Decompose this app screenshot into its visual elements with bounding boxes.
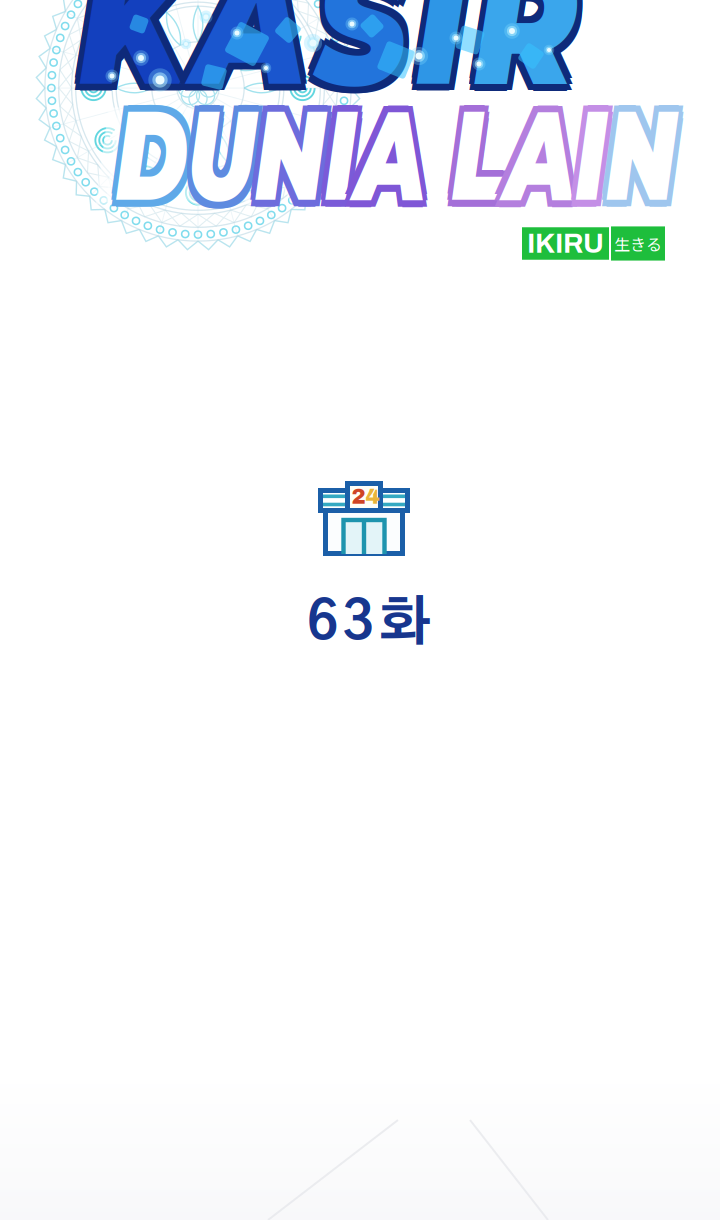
staticText: I [583, 105, 615, 215]
staticText: N [615, 100, 688, 210]
staticText: S [317, 0, 400, 99]
staticText: L [449, 104, 505, 215]
staticText: A [505, 100, 578, 210]
staticText: A [515, 100, 588, 210]
staticText: U [179, 100, 249, 210]
staticText: K [95, 0, 192, 95]
staticText: A [505, 95, 578, 206]
staticText [427, 95, 454, 205]
staticText: N [249, 100, 322, 210]
staticText: S [322, 0, 405, 95]
staticText: A [505, 104, 578, 215]
staticText: 4 [365, 485, 379, 508]
staticText: U [179, 105, 249, 215]
staticText: R [457, 0, 551, 104]
staticText: N [620, 95, 693, 206]
staticText: R [467, 0, 561, 99]
staticText: N [254, 95, 327, 206]
staticText [427, 105, 454, 215]
staticText: R [462, 0, 556, 104]
staticText: N [615, 100, 688, 210]
staticText: N [615, 105, 688, 215]
staticText: I [588, 104, 620, 215]
staticText: L [454, 100, 510, 210]
staticText: N [254, 104, 327, 215]
staticText: K [105, 0, 202, 104]
staticText: I [583, 100, 615, 210]
staticText: A [349, 100, 422, 210]
staticText: I [327, 95, 359, 206]
staticText: L [459, 95, 515, 206]
staticText: A [206, 0, 308, 104]
staticText: S [312, 0, 395, 104]
staticText: D [99, 100, 174, 210]
staticText: IKIRU [527, 228, 604, 259]
staticText: N [615, 100, 688, 210]
staticText [427, 100, 454, 210]
staticText: N [244, 95, 317, 206]
staticText: K [100, 0, 197, 99]
staticText: I [409, 0, 453, 99]
staticText: A [359, 104, 432, 215]
staticText: I [583, 100, 615, 210]
staticText: L [449, 95, 505, 206]
staticText: U [179, 100, 249, 210]
staticText: I [414, 0, 458, 95]
staticText: N [620, 104, 693, 215]
staticText: D [99, 95, 174, 206]
staticText: L [459, 104, 515, 215]
staticText: S [317, 0, 400, 94]
staticText: L [454, 95, 510, 205]
staticText: I [404, 0, 448, 95]
staticText: I [317, 100, 349, 210]
staticText: 生きる [614, 232, 662, 255]
staticText: 63화 [307, 597, 431, 651]
staticText: I [588, 100, 620, 210]
staticText: N [249, 100, 322, 210]
staticText: U [184, 104, 254, 215]
staticText: I [578, 104, 610, 215]
staticText: K [95, 0, 192, 99]
staticText: S [312, 0, 395, 95]
staticText: A [349, 95, 422, 206]
staticText: N [249, 105, 322, 215]
staticText: S [322, 0, 405, 104]
staticText: N [249, 95, 322, 205]
staticText: D [104, 100, 179, 210]
staticText: A [510, 95, 583, 205]
staticText: U [184, 95, 254, 206]
staticText: I [409, 0, 453, 94]
staticText: I [322, 100, 354, 210]
staticText: D [104, 95, 179, 205]
staticText: A [510, 100, 583, 210]
staticText: N [610, 100, 683, 210]
staticText: I [322, 100, 354, 210]
staticText: D [104, 100, 179, 210]
staticText: L [459, 100, 515, 210]
staticText: N [615, 95, 688, 205]
staticText: K [105, 0, 202, 99]
staticText [427, 100, 454, 210]
staticText: S [322, 0, 405, 99]
staticText: R [467, 0, 561, 95]
staticText: I [317, 104, 349, 215]
staticText: I [404, 0, 448, 99]
staticText: I [414, 0, 458, 99]
staticText: I [327, 104, 359, 215]
staticText: I [404, 0, 448, 104]
staticText: 2 [351, 485, 365, 508]
staticText: U [179, 95, 249, 205]
staticText: I [317, 95, 349, 206]
staticText [432, 104, 459, 215]
staticText: I [327, 100, 359, 210]
staticText: L [454, 100, 510, 210]
staticText: U [174, 95, 244, 206]
staticText: A [211, 0, 313, 99]
staticText: R [462, 0, 556, 99]
staticText: L [454, 105, 510, 215]
staticText: A [349, 104, 422, 215]
staticText [422, 100, 449, 210]
staticText: A [211, 0, 313, 95]
staticText: A [354, 100, 427, 210]
staticText: U [179, 100, 249, 210]
